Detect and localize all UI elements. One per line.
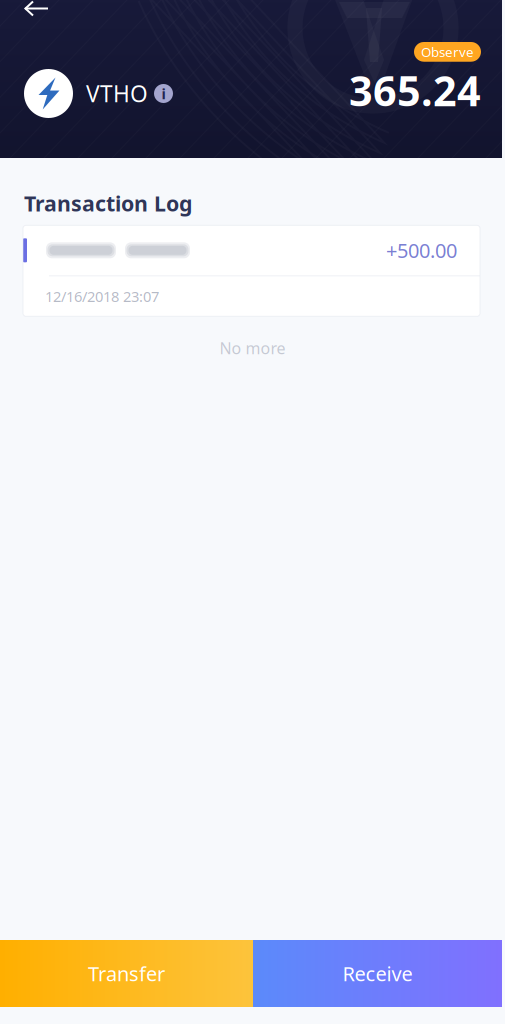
staticText: Transfer (88, 960, 165, 987)
staticText: 12/16/2018 23:07 (45, 287, 159, 306)
staticText: VTHO (86, 78, 148, 108)
staticText: 365.24 (349, 63, 481, 118)
staticText: No more (219, 337, 285, 358)
button[interactable]: Back (0, 0, 86, 34)
staticText: i (161, 84, 165, 103)
staticText: Receive (342, 960, 412, 987)
button[interactable]: Receive (253, 940, 502, 1007)
button[interactable]: Transfer (0, 940, 253, 1007)
staticText: Transaction Log (24, 189, 192, 217)
button[interactable]: Token info (150, 78, 177, 108)
staticText: Observe (421, 43, 474, 61)
button[interactable]: +500.00 (23, 225, 480, 275)
staticText: +500.00 (386, 237, 457, 264)
